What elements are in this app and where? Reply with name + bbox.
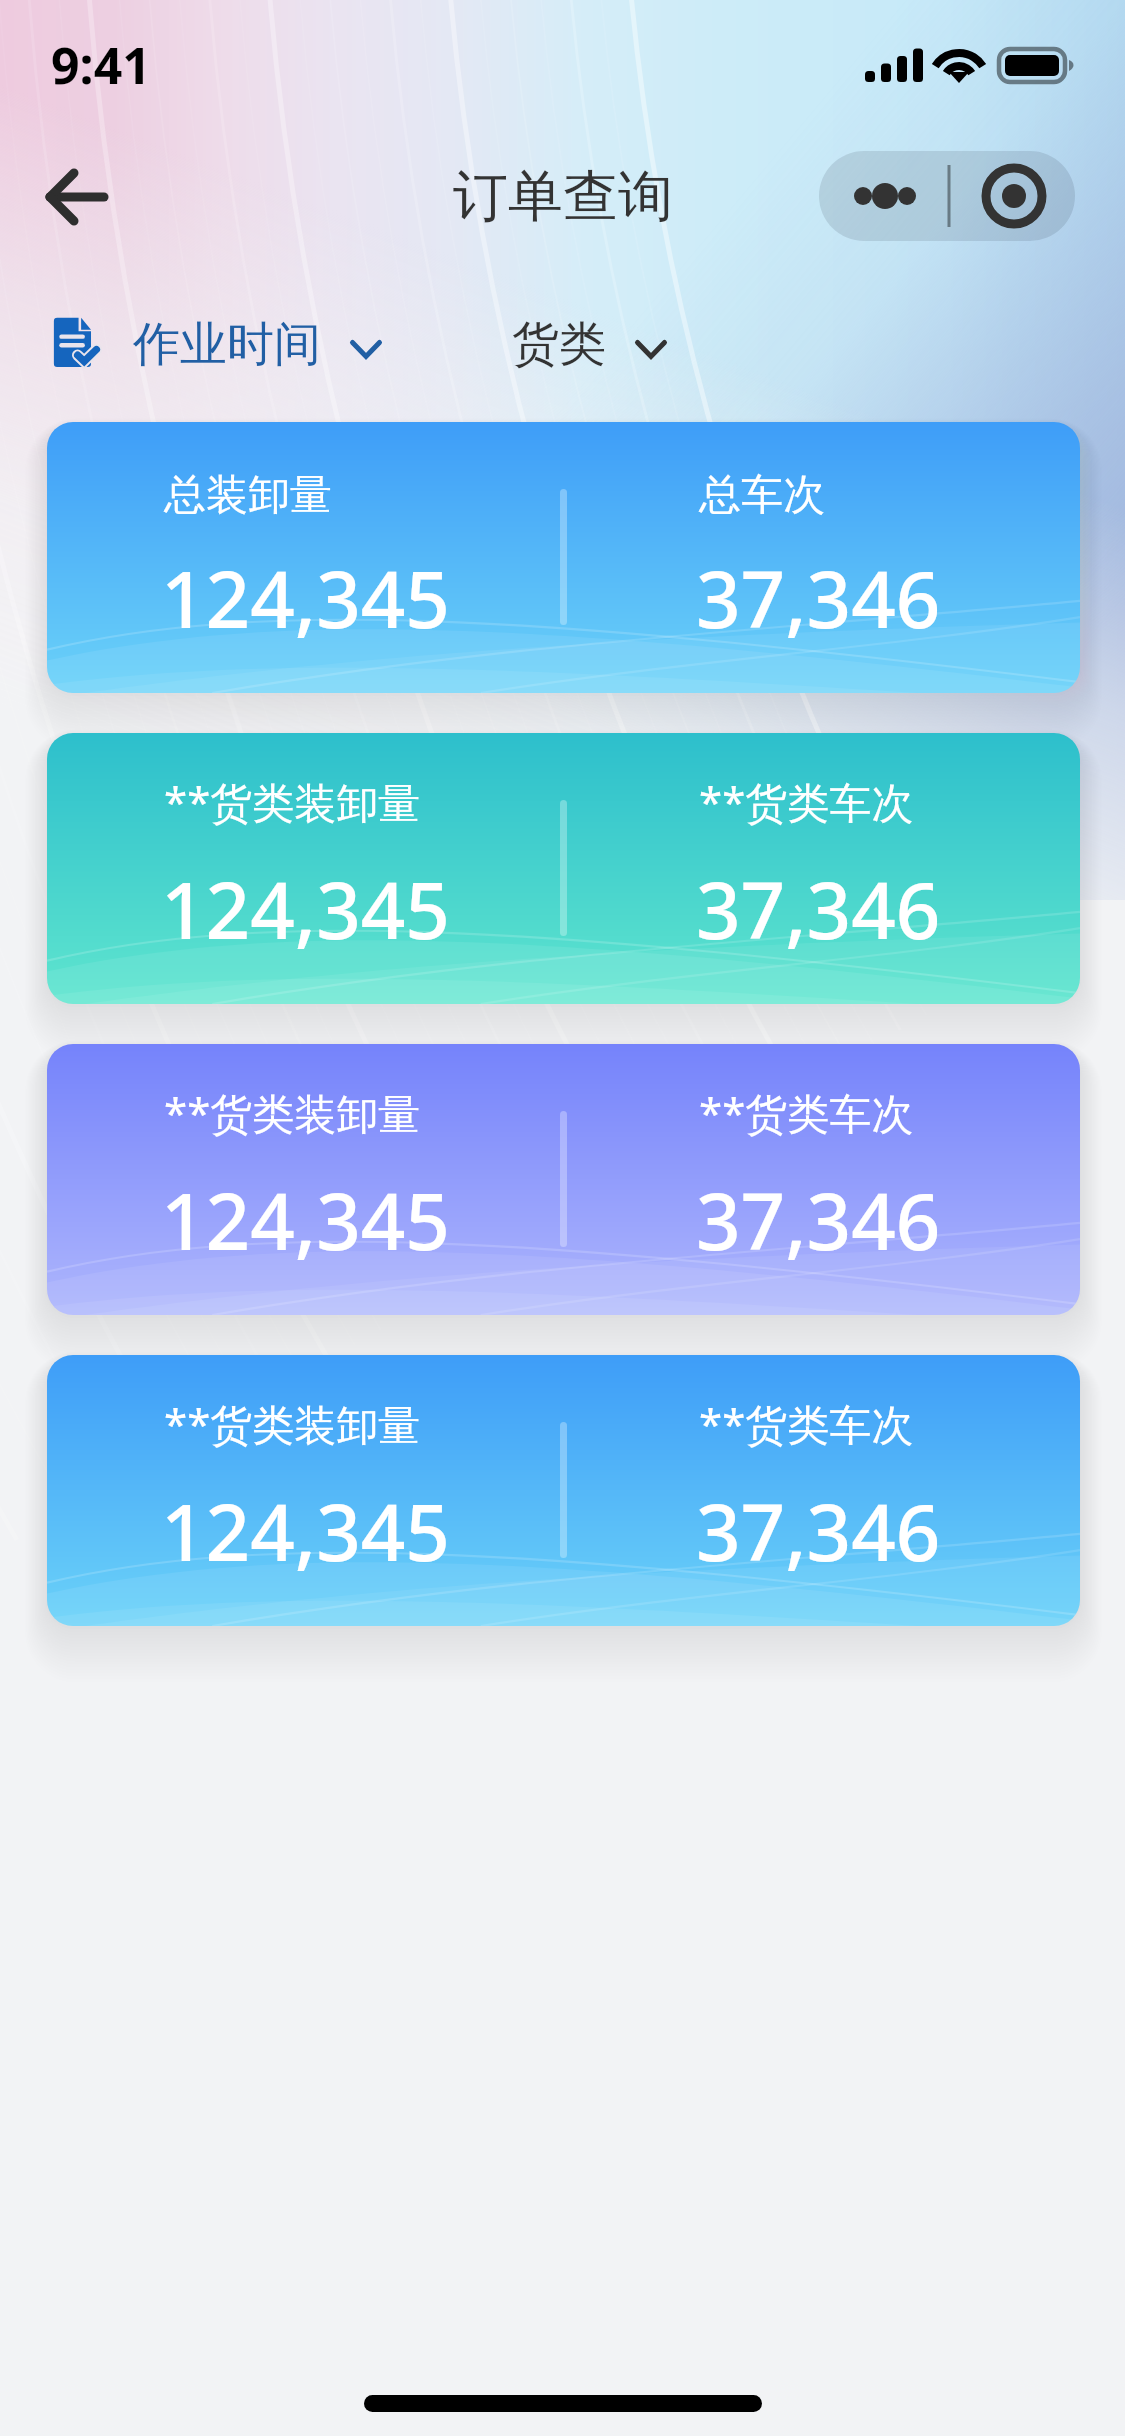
staticText: 总车次 bbox=[699, 469, 825, 522]
staticText: 124,345 bbox=[161, 856, 450, 962]
staticText: 37,346 bbox=[696, 545, 941, 651]
button[interactable]: **货类装卸量 bbox=[47, 1044, 1080, 1315]
button[interactable]: 货类 bbox=[512, 315, 667, 374]
button[interactable]: 作业时间 bbox=[52, 315, 382, 374]
staticText: 124,345 bbox=[161, 1167, 450, 1273]
staticText: **货类装卸量 bbox=[164, 1084, 421, 1141]
button[interactable]: Back bbox=[30, 151, 122, 243]
button[interactable]: 总装卸量 bbox=[47, 422, 1080, 693]
staticText: **货类车次 bbox=[699, 773, 914, 830]
staticText: **货类车次 bbox=[699, 1395, 914, 1452]
staticText: 124,345 bbox=[161, 545, 450, 651]
staticText: 货类 bbox=[512, 315, 606, 374]
staticText: **货类装卸量 bbox=[164, 773, 421, 830]
staticText: 37,346 bbox=[696, 1478, 941, 1584]
staticText: 作业时间 bbox=[133, 315, 321, 374]
staticText: 124,345 bbox=[161, 1478, 450, 1584]
staticText: 订单查询 bbox=[453, 162, 673, 231]
staticText: 总装卸量 bbox=[164, 469, 332, 522]
staticText: **货类装卸量 bbox=[164, 1395, 421, 1452]
button[interactable]: **货类装卸量 bbox=[47, 1355, 1080, 1626]
button[interactable]: **货类装卸量 bbox=[47, 733, 1080, 1004]
staticText: 37,346 bbox=[696, 856, 941, 962]
staticText: **货类车次 bbox=[699, 1084, 914, 1141]
staticText: 37,346 bbox=[696, 1167, 941, 1273]
button[interactable]: More options bbox=[819, 151, 1075, 241]
staticText: 9:41 bbox=[51, 31, 151, 99]
